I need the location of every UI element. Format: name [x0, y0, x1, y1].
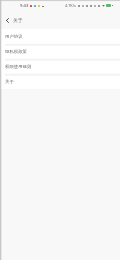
button[interactable]: 权限使用规则 [0, 59, 120, 74]
button[interactable]: 隐私权政策 [0, 44, 120, 59]
staticText: 4.7K/s [65, 3, 76, 8]
button[interactable]: 用户协议 [0, 29, 120, 44]
staticText: 权限使用规则 [5, 64, 32, 70]
button[interactable]: Back [0, 13, 14, 27]
staticText: 用户协议 [5, 34, 23, 40]
staticText: 关于 [5, 79, 14, 85]
staticText: 关于 [13, 17, 23, 23]
button[interactable]: 关于 [0, 74, 120, 89]
staticText: 隐私权政策 [5, 49, 27, 55]
staticText: 9:43 [20, 3, 29, 9]
